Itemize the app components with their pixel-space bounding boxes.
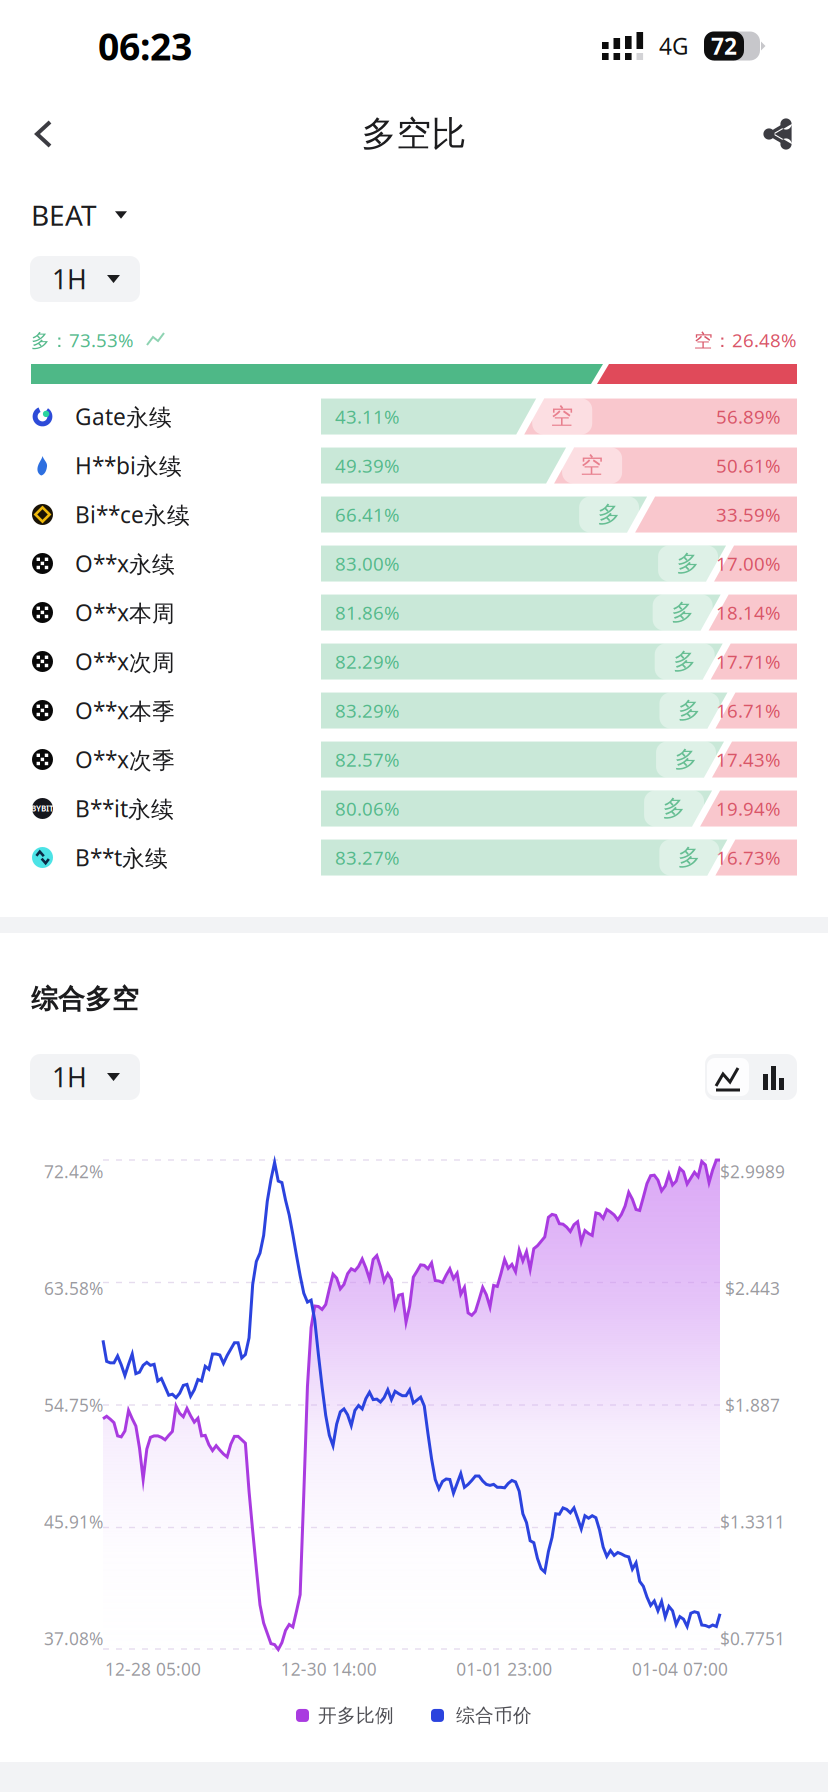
staticText: $1.887 xyxy=(725,1393,780,1416)
button[interactable]: 1H xyxy=(30,1054,140,1100)
staticText: 72 xyxy=(711,31,737,61)
staticText: 空 xyxy=(551,403,574,430)
staticText: 多 xyxy=(678,697,701,724)
staticText: 83.27% xyxy=(335,845,400,870)
staticText: O**x永续 xyxy=(75,548,175,579)
staticText: 01-01 23:00 xyxy=(456,1657,552,1680)
staticText: 33.59% xyxy=(716,502,781,527)
staticText: 16.71% xyxy=(716,698,781,723)
staticText: BYBIT xyxy=(31,803,54,814)
staticText: 开多比例 xyxy=(318,1704,394,1727)
button[interactable]: Share xyxy=(733,92,828,184)
staticText: 多 xyxy=(678,844,701,871)
staticText: $1.3311 xyxy=(720,1510,785,1533)
staticText: B**it永续 xyxy=(75,793,174,824)
button[interactable]: O**x次季 xyxy=(0,735,828,784)
button[interactable]: O**x永续 xyxy=(0,539,828,588)
staticText: H**bi永续 xyxy=(75,450,182,481)
staticText: 83.29% xyxy=(335,698,400,723)
staticText: 01-04 07:00 xyxy=(632,1657,728,1680)
staticText: 17.71% xyxy=(716,649,781,674)
staticText: O**x次周 xyxy=(75,646,175,677)
staticText: 17.43% xyxy=(716,747,781,772)
staticText: 多：73.53% xyxy=(31,328,134,352)
button[interactable]: 1H xyxy=(30,256,140,302)
button[interactable]: Back xyxy=(0,92,82,184)
staticText: $0.7751 xyxy=(720,1627,785,1650)
staticText: 多空比 xyxy=(361,113,466,155)
staticText: 54.75% xyxy=(44,1393,103,1416)
staticText: 37.08% xyxy=(44,1627,103,1650)
button[interactable]: O**x次周 xyxy=(0,637,828,686)
staticText: 18.14% xyxy=(716,600,781,625)
staticText: 空 xyxy=(581,452,604,479)
staticText: 4G xyxy=(659,31,689,61)
button[interactable]: H**bi永续 xyxy=(0,441,828,490)
staticText: 66.41% xyxy=(335,502,400,527)
staticText: 50.61% xyxy=(716,453,781,478)
staticText: 多 xyxy=(674,746,697,773)
staticText: 1H xyxy=(52,1059,87,1095)
staticText: $2.9989 xyxy=(720,1160,785,1183)
staticText: $2.443 xyxy=(725,1277,780,1300)
staticText: 19.94% xyxy=(716,796,781,821)
staticText: 49.39% xyxy=(335,453,400,478)
staticText: 56.89% xyxy=(716,404,781,429)
staticText: 82.57% xyxy=(335,747,400,772)
button[interactable]: Bar chart xyxy=(751,1058,797,1096)
staticText: 多 xyxy=(677,550,700,577)
staticText: O**x次季 xyxy=(75,744,175,775)
staticText: 17.00% xyxy=(716,551,781,576)
staticText: 72.42% xyxy=(44,1160,103,1183)
staticText: 空：26.48% xyxy=(694,328,797,352)
staticText: 80.06% xyxy=(335,796,400,821)
button[interactable]: Gate永续 xyxy=(0,392,828,441)
staticText: B**t永续 xyxy=(75,842,168,873)
staticText: 12-28 05:00 xyxy=(105,1657,201,1680)
button[interactable]: Line chart xyxy=(705,1058,751,1096)
staticText: BEAT xyxy=(31,196,97,234)
staticText: O**x本周 xyxy=(75,597,175,628)
button[interactable]: Bi**ce永续 xyxy=(0,490,828,539)
staticText: 63.58% xyxy=(44,1277,103,1300)
button[interactable]: BYBIT xyxy=(0,784,828,833)
staticText: 多 xyxy=(598,501,621,528)
staticText: 1H xyxy=(52,261,87,297)
staticText: 16.73% xyxy=(716,845,781,870)
button[interactable]: O**x本周 xyxy=(0,588,828,637)
staticText: 83.00% xyxy=(335,551,400,576)
staticText: 综合币价 xyxy=(456,1704,532,1727)
staticText: 多 xyxy=(663,795,686,822)
staticText: 43.11% xyxy=(335,404,400,429)
staticText: 06:23 xyxy=(98,21,192,71)
staticText: Bi**ce永续 xyxy=(75,499,190,530)
staticText: 82.29% xyxy=(335,649,400,674)
staticText: 多 xyxy=(671,599,694,626)
button[interactable]: O**x本季 xyxy=(0,686,828,735)
staticText: 综合多空 xyxy=(31,983,139,1015)
button[interactable]: BEAT xyxy=(0,195,147,235)
staticText: 12-30 14:00 xyxy=(281,1657,377,1680)
staticText: Gate永续 xyxy=(75,401,172,432)
staticText: 81.86% xyxy=(335,600,400,625)
button[interactable]: B**t永续 xyxy=(0,833,828,882)
staticText: 多 xyxy=(673,648,696,675)
staticText: 45.91% xyxy=(44,1510,103,1533)
staticText: O**x本季 xyxy=(75,695,175,726)
